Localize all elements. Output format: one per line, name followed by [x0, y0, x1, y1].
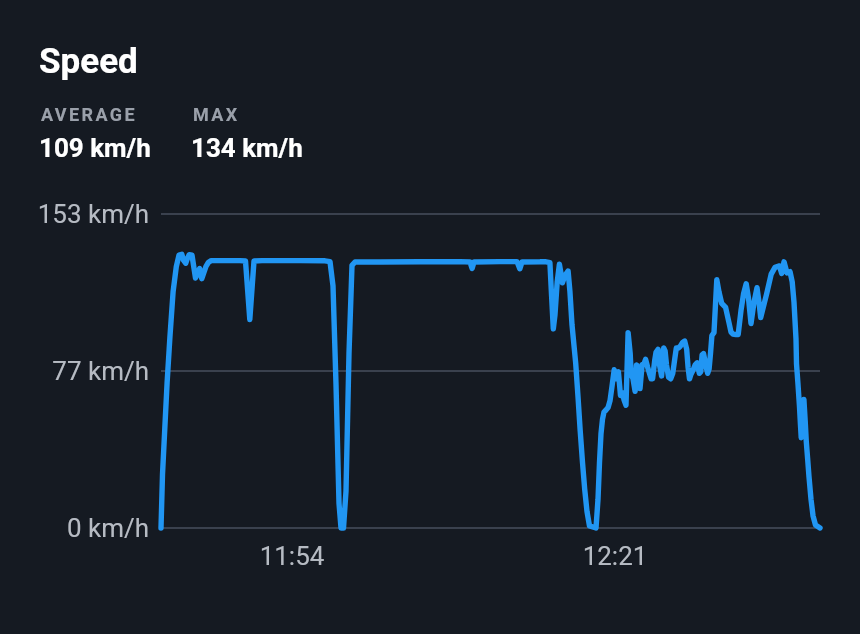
staticText: Speed	[39, 41, 138, 82]
staticText: 12:21	[515, 541, 715, 571]
staticText: 134 km/h	[191, 133, 303, 163]
button[interactable]: Speed	[39, 41, 149, 83]
staticText: 11:54	[192, 541, 392, 571]
staticText: MAX	[193, 104, 240, 125]
staticText: 0 km/h	[0, 513, 149, 543]
staticText: 77 km/h	[0, 356, 149, 386]
staticText: 109 km/h	[39, 133, 151, 163]
button[interactable]: AVERAGE	[39, 104, 161, 162]
button[interactable]: MAX	[191, 104, 311, 162]
staticText: 153 km/h	[0, 199, 149, 229]
staticText: AVERAGE	[41, 104, 137, 125]
button[interactable]: Speed chart	[161, 200, 820, 542]
